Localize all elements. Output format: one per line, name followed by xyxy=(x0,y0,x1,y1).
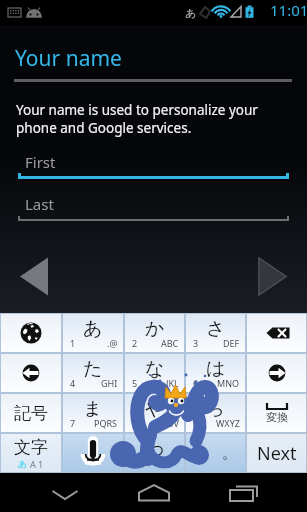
button[interactable]: あ xyxy=(63,314,123,352)
staticText: 5 xyxy=(132,377,138,389)
button[interactable]: は xyxy=(186,354,245,392)
staticText: 9 xyxy=(193,417,199,429)
button[interactable]: か xyxy=(125,314,184,352)
staticText: MNO xyxy=(217,377,240,389)
button[interactable]: Hide keyboard xyxy=(35,473,95,512)
button[interactable]: や xyxy=(125,394,184,432)
staticText: 記号 xyxy=(14,403,48,424)
button[interactable]: Next xyxy=(247,434,306,472)
button[interactable]: Home xyxy=(124,473,184,512)
staticText: Last xyxy=(25,194,54,214)
staticText: た xyxy=(83,357,103,381)
button[interactable]: Last xyxy=(18,193,289,221)
other: Right xyxy=(260,356,294,390)
button[interactable]: Next xyxy=(258,257,287,296)
other: Backspace xyxy=(260,316,294,350)
staticText: や xyxy=(145,397,165,421)
other: Change language xyxy=(14,316,48,350)
staticText: Next xyxy=(257,441,297,466)
staticText: 文字 xyxy=(14,437,48,458)
staticText: 2 xyxy=(132,337,138,349)
button[interactable]: Change language xyxy=(1,314,61,352)
other: Voice input xyxy=(76,436,110,470)
button[interactable]: な xyxy=(125,354,184,392)
staticText: 、 xyxy=(194,444,209,463)
staticText: PQRS xyxy=(94,417,118,429)
staticText: 4 xyxy=(70,377,76,389)
staticText: .@ xyxy=(107,337,118,349)
staticText: か xyxy=(145,317,165,341)
button[interactable]: ま xyxy=(63,394,123,432)
staticText: 1 xyxy=(70,337,76,349)
button[interactable]: さ xyxy=(186,314,245,352)
button[interactable]: Previous xyxy=(20,257,48,296)
staticText: ま xyxy=(83,397,103,421)
staticText: 0 xyxy=(132,457,138,469)
staticText: 6 xyxy=(193,377,199,389)
staticText: 11:01 xyxy=(270,0,307,20)
staticText: 7 xyxy=(70,417,76,429)
staticText: A 1 xyxy=(30,458,44,470)
staticText: Your name xyxy=(15,44,122,73)
staticText: あ xyxy=(83,317,103,341)
staticText: ら xyxy=(206,397,226,421)
button[interactable]: First xyxy=(18,151,289,179)
staticText: あ xyxy=(185,6,197,20)
button[interactable]: 、 xyxy=(186,434,245,472)
staticText: わ xyxy=(145,437,165,461)
staticText: GHI xyxy=(101,377,118,389)
staticText: 。 xyxy=(222,444,237,463)
button[interactable]: 記号 xyxy=(1,394,61,432)
staticText: 8 xyxy=(132,417,138,429)
button[interactable]: わ xyxy=(125,434,184,472)
staticText: は xyxy=(206,357,226,381)
button[interactable]: 文字 xyxy=(1,434,61,472)
staticText: WXYZ xyxy=(216,417,240,429)
staticText: あ xyxy=(18,458,28,469)
staticText: Your name is used to personalize your ph… xyxy=(16,101,264,137)
staticText: 3 xyxy=(193,337,199,349)
other: Left xyxy=(14,356,48,390)
staticText: 変換 xyxy=(266,410,288,424)
button[interactable]: Recent apps xyxy=(213,473,273,512)
staticText: JKL xyxy=(166,377,179,389)
button[interactable]: た xyxy=(63,354,123,392)
button[interactable]: Left xyxy=(1,354,61,392)
button[interactable]: Backspace xyxy=(247,314,306,352)
button[interactable]: 変換 xyxy=(247,394,306,432)
staticText: さ xyxy=(206,317,226,341)
staticText: First xyxy=(25,152,56,172)
staticText: な xyxy=(145,357,165,381)
staticText: ABC xyxy=(161,337,179,349)
button[interactable]: Right xyxy=(247,354,306,392)
button[interactable]: Voice input xyxy=(63,434,123,472)
staticText: DEF xyxy=(223,337,240,349)
staticText: TUV xyxy=(162,417,179,429)
button[interactable]: ら xyxy=(186,394,245,432)
